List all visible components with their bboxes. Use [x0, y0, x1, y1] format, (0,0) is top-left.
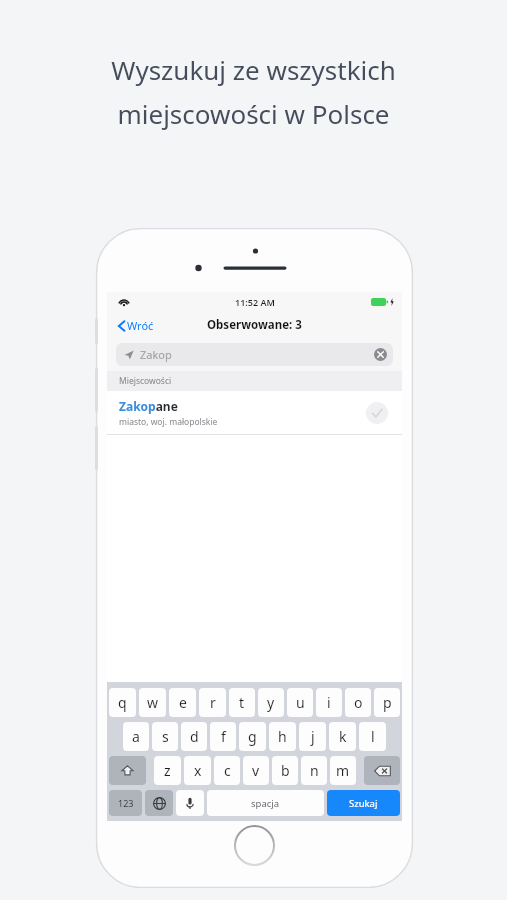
button[interactable]: Clear text: [374, 348, 387, 361]
button[interactable]: spacja: [207, 790, 324, 816]
staticText: miasto, woj. małopolskie: [119, 416, 218, 428]
staticText: miejscowości w Polsce: [117, 96, 390, 131]
button[interactable]: Change keyboard: [145, 790, 173, 816]
staticText: t: [239, 693, 245, 712]
button[interactable]: m: [330, 756, 356, 785]
staticText: z: [164, 761, 171, 780]
staticText: a: [132, 727, 140, 746]
staticText: Wróć: [127, 318, 154, 333]
button[interactable]: f: [210, 722, 236, 751]
button[interactable]: c: [214, 756, 240, 785]
button[interactable]: w: [139, 688, 166, 717]
staticText: p: [383, 693, 392, 712]
staticText: j: [311, 727, 315, 746]
button[interactable]: o: [345, 688, 371, 717]
button[interactable]: Zakopane: [107, 391, 402, 434]
button[interactable]: Backspace: [364, 756, 400, 785]
button[interactable]: p: [374, 688, 400, 717]
button[interactable]: j: [299, 722, 326, 751]
button[interactable]: e: [169, 688, 196, 717]
button[interactable]: Obserwuj: [366, 402, 388, 424]
staticText: g: [248, 727, 257, 746]
button[interactable]: s: [152, 722, 178, 751]
staticText: b: [281, 761, 290, 780]
button[interactable]: i: [316, 688, 342, 717]
staticText: Zakopane: [119, 398, 178, 414]
staticText: Zakop: [140, 347, 172, 362]
staticText: o: [354, 693, 363, 712]
button[interactable]: Zakop: [116, 343, 393, 366]
button[interactable]: g: [239, 722, 266, 751]
button[interactable]: Dictation: [176, 790, 204, 816]
staticText: l: [371, 727, 375, 746]
button[interactable]: b: [272, 756, 298, 785]
button[interactable]: t: [229, 688, 255, 717]
staticText: k: [339, 727, 347, 746]
button[interactable]: Wróć: [115, 315, 157, 336]
button[interactable]: l: [359, 722, 386, 751]
staticText: x: [194, 761, 202, 780]
button[interactable]: a: [123, 722, 149, 751]
staticText: Szukaj: [349, 797, 378, 810]
staticText: 123: [118, 797, 134, 809]
staticText: u: [296, 693, 305, 712]
staticText: spacja: [251, 797, 280, 810]
button[interactable]: y: [258, 688, 284, 717]
button[interactable]: k: [329, 722, 356, 751]
staticText: Wyszukuj ze wszystkich: [111, 52, 396, 87]
staticText: r: [210, 693, 216, 712]
button[interactable]: q: [109, 688, 136, 717]
staticText: y: [267, 693, 275, 712]
staticText: Obserwowane: 3: [207, 317, 302, 333]
button[interactable]: h: [269, 722, 296, 751]
button[interactable]: d: [181, 722, 207, 751]
button[interactable]: 123: [109, 790, 142, 816]
button[interactable]: v: [243, 756, 269, 785]
staticText: e: [179, 693, 187, 712]
staticText: m: [336, 761, 350, 780]
button[interactable]: Home: [234, 825, 275, 866]
staticText: d: [190, 727, 199, 746]
button[interactable]: x: [184, 756, 211, 785]
staticText: Miejscowości: [119, 375, 172, 387]
button[interactable]: n: [301, 756, 327, 785]
staticText: v: [252, 761, 260, 780]
staticText: q: [118, 693, 127, 712]
button[interactable]: z: [154, 756, 181, 785]
staticText: c: [224, 761, 231, 780]
staticText: n: [310, 761, 319, 780]
staticText: w: [147, 693, 159, 712]
staticText: s: [162, 727, 169, 746]
staticText: i: [327, 693, 331, 712]
button[interactable]: Szukaj: [327, 790, 400, 816]
staticText: 11:52 AM: [235, 296, 275, 308]
button[interactable]: r: [199, 688, 226, 717]
button[interactable]: Shift: [109, 756, 146, 785]
button[interactable]: u: [287, 688, 313, 717]
staticText: h: [278, 727, 287, 746]
staticText: f: [221, 727, 226, 746]
